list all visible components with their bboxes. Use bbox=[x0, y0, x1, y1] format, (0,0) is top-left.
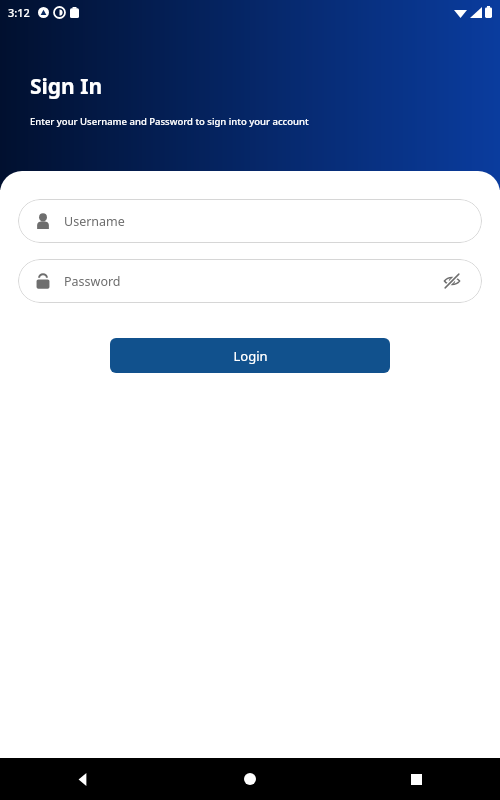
staticText: Username bbox=[64, 213, 464, 230]
button[interactable]: Login bbox=[110, 338, 390, 373]
button[interactable]: Password bbox=[18, 259, 482, 303]
staticText: Sign In bbox=[30, 72, 103, 101]
staticText: 3:12 bbox=[8, 5, 30, 20]
staticText: Password bbox=[64, 273, 440, 290]
staticText: Enter your Username and Password to sign… bbox=[30, 115, 309, 128]
button[interactable]: Username bbox=[18, 199, 482, 243]
button[interactable]: Recent apps bbox=[333, 758, 500, 800]
button[interactable]: Home bbox=[166, 758, 333, 800]
button[interactable]: Show password bbox=[440, 269, 464, 293]
button[interactable]: Back bbox=[0, 758, 166, 800]
staticText: Login bbox=[233, 347, 268, 365]
